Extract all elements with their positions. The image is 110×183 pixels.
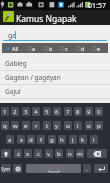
button[interactable]: 6 — [53, 107, 61, 116]
staticText: 9 — [87, 108, 91, 116]
staticText: g — [50, 136, 54, 144]
button[interactable]: Gajul — [0, 84, 110, 98]
button[interactable]: e — [22, 121, 30, 130]
staticText: m — [77, 150, 83, 158]
button[interactable]: 5 — [43, 107, 51, 116]
button[interactable]: 4 — [32, 107, 40, 116]
button[interactable]: j — [69, 135, 77, 144]
button[interactable]: 1 — [1, 107, 9, 116]
button[interactable]: v — [45, 149, 53, 158]
staticText: h — [60, 136, 64, 144]
button[interactable]: Gableg — [0, 56, 110, 70]
staticText: All — [12, 45, 19, 52]
button[interactable]: m — [76, 149, 84, 158]
staticText: 0 — [97, 108, 101, 116]
button[interactable]: s — [17, 135, 25, 144]
staticText: Kamus Ngapak — [16, 13, 77, 25]
button[interactable]: c — [59, 43, 75, 53]
staticText: 4 — [34, 108, 38, 116]
staticText: Gajul — [5, 87, 21, 96]
button[interactable]: 8 — [74, 107, 82, 116]
button[interactable]: b — [43, 43, 59, 53]
button[interactable]: x — [24, 149, 32, 158]
button[interactable]: 0 — [95, 107, 103, 116]
staticText: 6 — [55, 108, 59, 116]
staticText: j — [72, 136, 74, 144]
staticText: l — [93, 136, 95, 144]
button[interactable]: 3 — [22, 107, 30, 116]
button[interactable]: a — [6, 135, 14, 144]
button[interactable]: u — [64, 121, 72, 130]
staticText: f — [40, 136, 43, 144]
staticText: k — [81, 136, 85, 144]
staticText: y — [55, 122, 59, 130]
button[interactable]: t — [43, 121, 51, 130]
staticText: p — [97, 122, 101, 130]
staticText: t — [46, 122, 49, 130]
staticText: w — [13, 122, 18, 130]
button[interactable]: 2 — [11, 107, 19, 116]
staticText: 2 — [13, 108, 17, 116]
button[interactable]: d — [76, 43, 92, 53]
button[interactable]: q — [1, 121, 9, 130]
staticText: c — [37, 150, 40, 158]
staticText: q — [3, 122, 7, 130]
staticText: x — [26, 150, 30, 158]
button[interactable]: g — [48, 135, 56, 144]
button[interactable]: l — [90, 135, 98, 144]
staticText: r — [35, 122, 38, 130]
button[interactable]: Shift — [1, 149, 11, 158]
staticText: 5 — [45, 108, 49, 116]
button[interactable]: w — [11, 121, 19, 130]
staticText: d — [81, 45, 85, 52]
button[interactable]: Gagéan / gagéyan — [0, 70, 110, 84]
button[interactable]: Space — [26, 164, 81, 173]
staticText: Gagéan / gagéyan — [5, 73, 61, 82]
staticText: English(UK) — [43, 165, 65, 170]
button[interactable]: c — [34, 149, 42, 158]
button[interactable]: a — [27, 43, 43, 53]
staticText: d — [29, 136, 33, 144]
staticText: a — [8, 136, 12, 144]
button[interactable]: y — [53, 121, 61, 130]
button[interactable]: z — [14, 149, 22, 158]
button[interactable]: b — [55, 149, 63, 158]
button[interactable]: i — [74, 121, 82, 130]
button[interactable]: k — [79, 135, 87, 144]
staticText: a — [32, 45, 36, 52]
button[interactable]: p — [95, 121, 103, 130]
staticText: c — [65, 45, 68, 52]
staticText: o — [87, 122, 91, 130]
staticText: b — [57, 150, 61, 158]
button[interactable]: o — [85, 121, 93, 130]
button[interactable]: 7 — [64, 107, 72, 116]
button[interactable]: Enter — [94, 164, 108, 173]
button[interactable]: r — [32, 121, 40, 130]
staticText: 8 — [76, 108, 80, 116]
button[interactable]: Settings — [13, 164, 22, 173]
button[interactable]: f — [37, 135, 45, 144]
staticText: b — [49, 45, 53, 52]
staticText: i — [77, 122, 79, 130]
staticText: v — [47, 150, 51, 158]
button[interactable]: 9 — [85, 107, 93, 116]
staticText: Sym — [1, 166, 11, 172]
button[interactable]: Backspace — [87, 149, 107, 158]
staticText: z — [17, 150, 20, 158]
staticText: n — [68, 150, 72, 158]
button[interactable]: App icon — [3, 11, 14, 22]
button[interactable]: n — [66, 149, 74, 158]
button[interactable]: e — [92, 43, 108, 53]
staticText: ga — [8, 31, 17, 41]
staticText: 7 — [66, 108, 70, 116]
button[interactable] — [2, 43, 24, 53]
button[interactable]: h — [58, 135, 66, 144]
staticText: u — [66, 122, 70, 130]
button[interactable]: Search — [3, 27, 107, 41]
button[interactable]: . — [83, 164, 91, 173]
staticText: e — [97, 45, 101, 52]
staticText: s — [20, 136, 23, 144]
button[interactable]: Sym — [1, 164, 11, 173]
staticText: 1 — [3, 108, 7, 116]
button[interactable]: d — [27, 135, 35, 144]
